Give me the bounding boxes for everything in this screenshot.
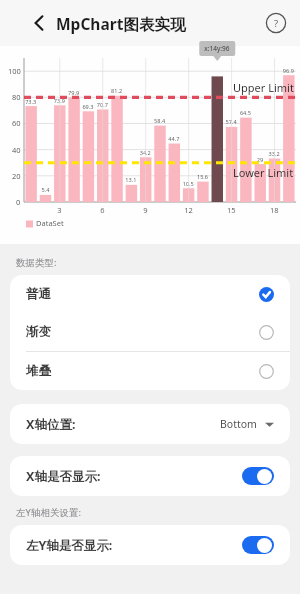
staticText: MpChart图表实现 bbox=[56, 13, 186, 34]
staticText: 左Y轴相关设置: bbox=[16, 506, 81, 519]
button[interactable]: 左Y轴是否显示: bbox=[10, 525, 290, 565]
staticText: 数据类型: bbox=[16, 256, 57, 269]
staticText: X轴位置: bbox=[26, 416, 76, 433]
staticText: Bottom bbox=[220, 417, 257, 431]
staticText: 渐变 bbox=[26, 324, 51, 340]
staticText: X轴是否显示: bbox=[26, 468, 101, 485]
button[interactable]: Help bbox=[265, 12, 287, 34]
button[interactable]: Back bbox=[26, 10, 52, 36]
button[interactable]: X轴位置: bbox=[10, 404, 290, 444]
button[interactable]: 渐变 bbox=[10, 313, 290, 351]
staticText: 普通 bbox=[26, 286, 51, 302]
button[interactable]: X轴是否显示: bbox=[10, 456, 290, 496]
staticText: 左Y轴是否显示: bbox=[26, 537, 113, 554]
staticText: 堆叠 bbox=[26, 363, 51, 379]
button[interactable]: 堆叠 bbox=[10, 352, 290, 390]
button[interactable]: 普通 bbox=[10, 275, 290, 313]
staticText: ? bbox=[274, 17, 279, 30]
button[interactable]: Toggle X轴是否显示: bbox=[242, 467, 274, 485]
button[interactable]: Toggle 左Y轴是否显示: bbox=[242, 536, 274, 554]
